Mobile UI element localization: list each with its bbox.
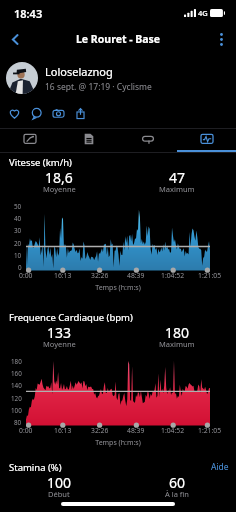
- staticText: Maximum: [159, 184, 195, 194]
- staticText: 30: [14, 226, 22, 235]
- button[interactable]: Aide: [211, 461, 229, 473]
- staticText: 48:39: [127, 271, 145, 280]
- staticText: 47: [169, 168, 186, 187]
- staticText: 18,6: [45, 168, 73, 187]
- staticText: 60: [169, 473, 186, 492]
- staticText: 80: [14, 418, 22, 427]
- staticText: 133: [47, 323, 72, 342]
- staticText: 50: [14, 202, 22, 211]
- staticText: Moyenne: [43, 339, 76, 349]
- staticText: Vitesse (km/h): [9, 156, 72, 169]
- staticText: 32:26: [91, 271, 109, 280]
- staticText: 100: [47, 473, 72, 492]
- staticText: Loloselaznog: [45, 64, 113, 79]
- staticText: Aide: [211, 461, 229, 473]
- staticText: 1:04:52: [161, 271, 185, 280]
- staticText: Maximum: [159, 339, 195, 349]
- button[interactable]: Details: [59, 128, 118, 153]
- button[interactable]: Share: [69, 102, 91, 124]
- staticText: 160: [11, 369, 22, 378]
- staticText: Moyenne: [43, 184, 76, 194]
- staticText: 1:21:05: [198, 271, 222, 280]
- staticText: 32:26: [91, 426, 109, 435]
- staticText: 140: [11, 381, 22, 390]
- staticText: 10: [14, 251, 22, 260]
- staticText: 1:21:05: [198, 426, 222, 435]
- staticText: Temps (h:m:s): [0, 283, 236, 293]
- staticText: Stamina (%): [9, 461, 62, 474]
- button[interactable]: Back: [0, 26, 30, 52]
- staticText: 0: [18, 263, 22, 272]
- staticText: 180: [165, 323, 190, 342]
- button[interactable]: Graphs: [177, 128, 236, 153]
- staticText: 4G: [198, 8, 208, 18]
- staticText: 16:13: [54, 271, 72, 280]
- staticText: 40: [14, 214, 22, 223]
- staticText: Temps (h:m:s): [0, 438, 236, 448]
- button[interactable]: Laps: [118, 128, 177, 153]
- button[interactable]: More options: [206, 26, 236, 52]
- staticText: 20: [14, 239, 22, 248]
- staticText: 180: [11, 357, 22, 366]
- staticText: 48:39: [127, 426, 145, 435]
- staticText: À la fin: [165, 489, 189, 499]
- staticText: Début: [48, 489, 70, 499]
- staticText: 0:00: [19, 271, 33, 280]
- button[interactable]: Photos: [47, 102, 69, 124]
- staticText: 16:13: [54, 426, 72, 435]
- staticText: 100: [11, 406, 22, 415]
- staticText: Le Rouret - Base: [76, 32, 161, 46]
- button[interactable]: Map: [0, 128, 59, 153]
- staticText: 0:00: [19, 426, 33, 435]
- button[interactable]: Comment: [25, 102, 47, 124]
- button[interactable]: Like: [3, 102, 25, 124]
- staticText: 1:04:52: [161, 426, 185, 435]
- staticText: Frequence Cardiaque (bpm): [9, 311, 133, 324]
- staticText: 120: [11, 394, 22, 403]
- staticText: 18:43: [14, 6, 43, 21]
- staticText: 16 sept. @ 17:19 · Cyclisme: [45, 81, 152, 93]
